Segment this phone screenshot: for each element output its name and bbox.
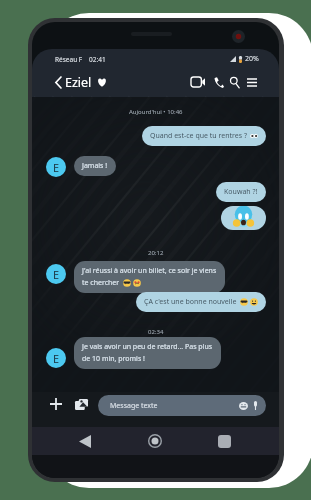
button[interactable]: Home (142, 428, 168, 454)
button[interactable]: J'ai réussi à avoir un billet, ce soir j… (74, 261, 225, 293)
button[interactable]: Quand est-ce que tu rentres ? (142, 126, 266, 146)
button[interactable]: E (46, 348, 66, 368)
button[interactable]: Recents (211, 428, 237, 454)
staticText: E (53, 160, 60, 175)
button[interactable]: Kouwah ?! (216, 182, 266, 202)
staticText: E (53, 267, 60, 282)
staticText: Kouwah ?! (224, 187, 258, 197)
button[interactable]: E (46, 264, 66, 284)
button[interactable]: Video call (190, 74, 206, 90)
button[interactable]: Back (72, 428, 98, 454)
button[interactable]: ÇA c'est une bonne nouvelle (136, 292, 266, 312)
button[interactable]: Add (47, 395, 65, 413)
staticText: Je vais avoir un peu de retard... Pas pl… (82, 342, 213, 352)
button[interactable]: Call (211, 74, 227, 90)
staticText: de 10 min, promis ! (82, 354, 145, 364)
button[interactable]: Back (53, 69, 109, 95)
staticText: Jamais ! (82, 161, 108, 171)
staticText: 20% (245, 54, 259, 64)
staticText: 02:34 (148, 328, 164, 336)
staticText: Message texte (110, 401, 158, 411)
staticText: ÇA c'est une bonne nouvelle (144, 297, 237, 307)
button[interactable]: E (46, 157, 66, 177)
staticText: Quand est-ce que tu rentres ? (150, 131, 247, 141)
staticText: 20:12 (148, 249, 164, 257)
staticText: Eziel (65, 74, 92, 91)
button[interactable]: Jamais ! (74, 156, 116, 176)
button[interactable]: Gallery (72, 395, 90, 413)
button[interactable]: Search (227, 74, 243, 90)
button[interactable]: Message texte (98, 395, 266, 416)
staticText: Réseau F (55, 55, 83, 64)
button[interactable]: Menu (244, 74, 260, 90)
staticText: J'ai réussi à avoir un billet, ce soir j… (82, 266, 217, 276)
staticText: 02:41 (89, 55, 106, 64)
staticText: Aujourd'hui • 10:46 (129, 108, 183, 116)
staticText: te chercher (82, 278, 120, 288)
button[interactable] (221, 206, 266, 230)
other: Back (55, 77, 61, 88)
staticText: E (53, 351, 60, 366)
button[interactable]: Je vais avoir un peu de retard... Pas pl… (74, 337, 221, 369)
